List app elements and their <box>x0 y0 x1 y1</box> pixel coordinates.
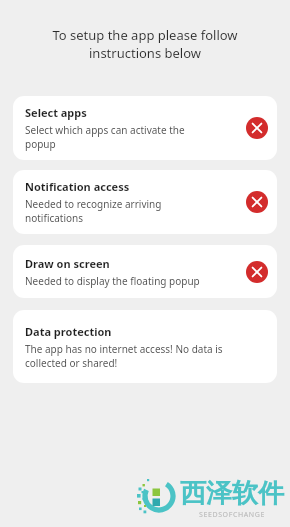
staticText: Select apps <box>25 105 87 120</box>
staticText: The app has no internet access! No data … <box>25 342 223 370</box>
button[interactable]: Not configured <box>246 191 268 213</box>
button[interactable]: Not configured <box>246 261 268 283</box>
button[interactable]: Data protection <box>13 310 277 383</box>
staticText: SEEDSOFCHANGE <box>199 510 265 520</box>
button[interactable]: Draw on screen <box>13 245 277 298</box>
staticText: Needed to display the floating popup <box>25 274 200 288</box>
staticText: Select which apps can activate the popup <box>25 123 185 151</box>
staticText: Data protection <box>25 324 112 339</box>
staticText: Notification access <box>25 179 130 194</box>
staticText: Needed to recognize arriving notificatio… <box>25 197 162 225</box>
button[interactable]: Select apps <box>13 96 277 160</box>
button[interactable]: Notification access <box>13 170 277 234</box>
staticText: To setup the app please follow instructi… <box>24 26 266 62</box>
button[interactable]: Not configured <box>246 117 268 139</box>
staticText: 西泽软件 <box>180 477 284 510</box>
staticText: Draw on screen <box>25 256 110 271</box>
